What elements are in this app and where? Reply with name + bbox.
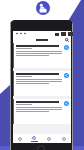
button[interactable]: Share (13, 99, 71, 124)
button[interactable]: Share (13, 43, 71, 68)
button[interactable]: Home (13, 134, 27, 143)
button[interactable]: Search (65, 38, 69, 42)
button[interactable]: Share (13, 71, 71, 96)
button[interactable]: Saved (41, 134, 56, 143)
other: App icon (36, 1, 50, 15)
button[interactable]: Share (64, 73, 69, 78)
button[interactable]: Share (64, 101, 69, 106)
button[interactable]: Share (64, 45, 69, 50)
button[interactable]: More (56, 134, 71, 143)
button[interactable]: Trending (27, 134, 41, 143)
